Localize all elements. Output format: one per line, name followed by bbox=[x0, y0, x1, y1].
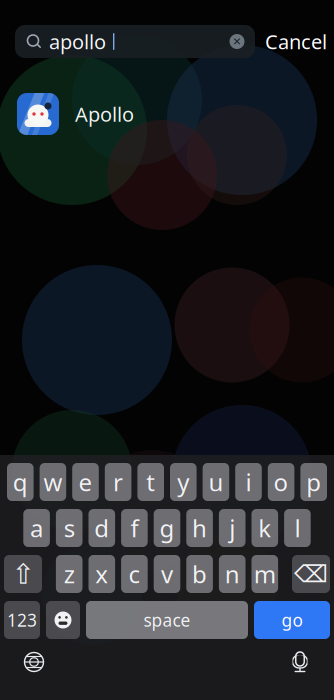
staticText: go bbox=[281, 608, 302, 631]
staticText: a bbox=[30, 512, 43, 544]
staticText: o bbox=[274, 466, 289, 498]
button[interactable]: Apollo bbox=[0, 86, 334, 142]
staticText: p bbox=[306, 466, 321, 498]
staticText: Cancel bbox=[265, 28, 327, 55]
button[interactable]: f bbox=[121, 509, 148, 547]
staticText: b bbox=[192, 558, 207, 590]
button[interactable]: Dictate bbox=[280, 645, 320, 679]
button[interactable]: space bbox=[86, 601, 248, 639]
staticText: g bbox=[159, 512, 174, 544]
button[interactable]: Shift bbox=[4, 555, 42, 593]
staticText: v bbox=[161, 558, 173, 590]
button[interactable]: l bbox=[284, 509, 311, 547]
button[interactable]: a bbox=[23, 509, 50, 547]
staticText: t bbox=[146, 466, 155, 498]
staticText: ⌫ bbox=[294, 560, 328, 588]
button[interactable]: u bbox=[203, 463, 229, 501]
staticText: ✕ bbox=[232, 35, 241, 47]
button[interactable]: z bbox=[56, 555, 82, 593]
button[interactable]: v bbox=[154, 555, 180, 593]
button[interactable]: x bbox=[88, 555, 115, 593]
staticText: e bbox=[78, 466, 92, 498]
staticText: w bbox=[43, 466, 62, 498]
button[interactable]: go bbox=[254, 601, 330, 639]
staticText: y bbox=[177, 466, 189, 498]
staticText: ⇧ bbox=[11, 558, 34, 590]
button[interactable]: w bbox=[40, 463, 66, 501]
button[interactable]: q bbox=[7, 463, 34, 501]
button[interactable]: r bbox=[105, 463, 131, 501]
staticText: j bbox=[229, 512, 235, 544]
staticText: space bbox=[143, 608, 190, 631]
staticText: Apollo bbox=[75, 101, 134, 127]
button[interactable]: Numbers bbox=[4, 601, 40, 639]
staticText: 123 bbox=[7, 608, 37, 631]
staticText: apollo bbox=[49, 28, 106, 55]
button[interactable]: h bbox=[186, 509, 213, 547]
button[interactable]: n bbox=[219, 555, 245, 593]
button[interactable]: s bbox=[56, 509, 82, 547]
button[interactable]: i bbox=[235, 463, 262, 501]
button[interactable]: p bbox=[300, 463, 327, 501]
button[interactable]: Emoji bbox=[46, 601, 80, 639]
staticText: d bbox=[94, 512, 109, 544]
staticText: q bbox=[13, 466, 28, 498]
button[interactable]: m bbox=[251, 555, 278, 593]
staticText: x bbox=[95, 558, 108, 590]
button[interactable]: o bbox=[268, 463, 294, 501]
button[interactable]: k bbox=[251, 509, 278, 547]
staticText: n bbox=[225, 558, 240, 590]
button[interactable]: y bbox=[170, 463, 197, 501]
staticText: z bbox=[64, 558, 75, 590]
staticText: r bbox=[113, 466, 123, 498]
staticText: u bbox=[208, 466, 223, 498]
button[interactable]: d bbox=[88, 509, 115, 547]
button[interactable]: Delete bbox=[292, 555, 330, 593]
staticText: f bbox=[130, 512, 138, 544]
button[interactable]: g bbox=[154, 509, 180, 547]
button[interactable]: Clear text bbox=[224, 26, 250, 56]
staticText: l bbox=[294, 512, 300, 544]
staticText: s bbox=[64, 512, 75, 544]
button[interactable]: Next keyboard bbox=[14, 645, 54, 679]
staticText: k bbox=[258, 512, 271, 544]
staticText: m bbox=[254, 558, 276, 590]
button[interactable]: b bbox=[186, 555, 213, 593]
button[interactable]: Cancel bbox=[255, 25, 334, 58]
staticText: i bbox=[245, 466, 251, 498]
button[interactable]: j bbox=[219, 509, 245, 547]
button[interactable]: e bbox=[72, 463, 99, 501]
button[interactable]: c bbox=[121, 555, 148, 593]
staticText: c bbox=[128, 558, 140, 590]
staticText: h bbox=[192, 512, 207, 544]
button[interactable]: t bbox=[137, 463, 164, 501]
